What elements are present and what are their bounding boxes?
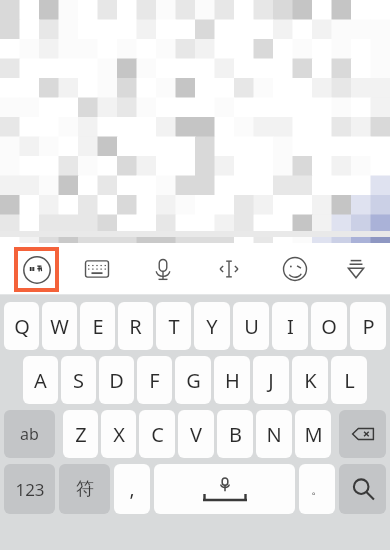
button[interactable]: Q: [4, 302, 39, 350]
button[interactable]: K: [292, 356, 328, 404]
staticText: E: [92, 313, 104, 340]
button[interactable]: B: [217, 410, 253, 458]
button[interactable]: V: [178, 410, 214, 458]
button[interactable]: X: [101, 410, 136, 458]
staticText: C: [151, 421, 164, 448]
staticText: G: [186, 367, 201, 394]
button[interactable]: S: [61, 356, 96, 404]
button[interactable]: 123: [4, 464, 55, 514]
staticText: K: [304, 367, 317, 394]
button[interactable]: Keyboard layout: [77, 249, 117, 289]
button[interactable]: R: [118, 302, 153, 350]
button[interactable]: N: [256, 410, 292, 458]
button[interactable]: H: [214, 356, 250, 404]
button[interactable]: E: [80, 302, 115, 350]
staticText: L: [344, 367, 355, 394]
staticText: J: [268, 367, 274, 394]
button[interactable]: Z: [63, 410, 98, 458]
button[interactable]: 符: [59, 464, 110, 514]
button[interactable]: W: [42, 302, 77, 350]
button[interactable]: Y: [194, 302, 230, 350]
button[interactable]: O: [311, 302, 347, 350]
staticText: O: [321, 313, 337, 340]
button[interactable]: G: [175, 356, 211, 404]
button[interactable]: L: [331, 356, 367, 404]
staticText: Q: [14, 313, 30, 340]
staticText: V: [190, 421, 202, 448]
staticText: ab: [20, 423, 39, 445]
staticText: Y: [206, 313, 218, 340]
staticText: B: [229, 421, 242, 448]
button[interactable]: C: [139, 410, 175, 458]
staticText: Z: [75, 421, 87, 448]
button[interactable]: U: [233, 302, 269, 350]
staticText: 123: [15, 478, 45, 501]
button[interactable]: 。: [299, 464, 335, 514]
button[interactable]: P: [350, 302, 386, 350]
button[interactable]: Emoji: [275, 249, 315, 289]
button[interactable]: J: [253, 356, 289, 404]
button[interactable]: ,: [114, 464, 150, 514]
staticText: D: [109, 367, 124, 394]
staticText: 符: [76, 478, 94, 501]
button[interactable]: A: [23, 356, 58, 404]
button[interactable]: T: [156, 302, 191, 350]
staticText: W: [50, 313, 69, 340]
staticText: S: [73, 367, 84, 394]
staticText: M: [304, 421, 323, 448]
button[interactable]: Backspace: [339, 410, 386, 458]
staticText: X: [113, 421, 125, 448]
staticText: F: [149, 367, 160, 394]
button[interactable]: Hide keyboard: [336, 249, 376, 289]
button[interactable]: Search: [339, 464, 386, 514]
button[interactable]: iFlytek input method: [18, 251, 55, 288]
staticText: R: [129, 313, 142, 340]
staticText: I: [287, 313, 294, 340]
button[interactable]: M: [295, 410, 331, 458]
staticText: U: [244, 313, 259, 340]
button[interactable]: Voice input: [143, 249, 183, 289]
staticText: A: [34, 367, 47, 394]
button[interactable]: Move cursor: [209, 249, 249, 289]
staticText: N: [266, 421, 282, 448]
staticText: P: [362, 313, 375, 340]
button[interactable]: D: [99, 356, 134, 404]
staticText: H: [225, 367, 240, 394]
staticText: T: [168, 313, 180, 340]
button[interactable]: F: [137, 356, 172, 404]
staticText: 。: [311, 481, 324, 497]
staticText: ,: [129, 476, 135, 502]
button[interactable]: Space: [154, 464, 295, 514]
button[interactable]: I: [272, 302, 308, 350]
button[interactable]: ab: [4, 410, 55, 458]
